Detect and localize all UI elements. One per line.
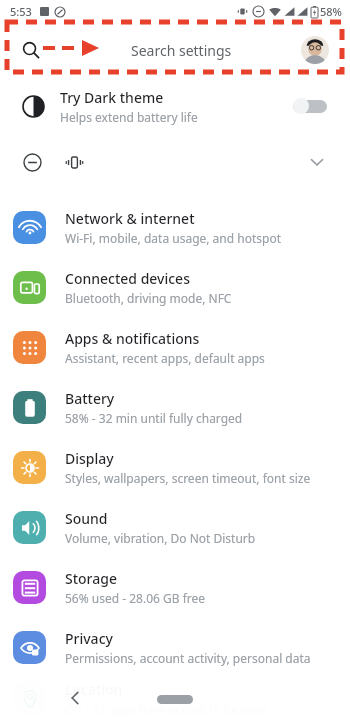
other: Expand — [309, 154, 325, 170]
button[interactable]: Location — [0, 677, 350, 719]
staticText: Try Dark theme — [60, 88, 164, 107]
other: Do not disturb — [23, 153, 42, 172]
staticText: Search settings — [131, 41, 232, 60]
staticText: Permissions, account activity, personal … — [65, 650, 311, 666]
staticText: 5:53 — [10, 4, 32, 19]
staticText: Apps & notifications — [65, 329, 200, 348]
staticText: Network & internet — [65, 209, 195, 228]
staticText: 56% used - 28.06 GB free — [65, 590, 206, 606]
button[interactable]: Battery — [0, 377, 350, 437]
staticText: Assistant, recent apps, default apps — [65, 350, 265, 366]
button[interactable]: Do not disturb — [9, 141, 341, 183]
button[interactable]: Back — [68, 691, 82, 705]
staticText: 58% — [320, 4, 342, 19]
button[interactable]: Apps & notifications — [0, 317, 350, 377]
staticText: Display — [65, 449, 114, 468]
staticText: Battery — [65, 389, 115, 408]
staticText: On - 22 apps have access to location — [65, 701, 269, 717]
button[interactable]: Search — [9, 28, 341, 72]
button[interactable]: Sound — [0, 497, 350, 557]
button[interactable]: Network & internet — [0, 197, 350, 257]
staticText: Wi-Fi, mobile, data usage, and hotspot — [65, 230, 281, 246]
button[interactable]: Connected devices — [0, 257, 350, 317]
button[interactable]: Display — [0, 437, 350, 497]
staticText: Helps extend battery life — [60, 109, 198, 125]
staticText: Storage — [65, 569, 117, 588]
staticText: Volume, vibration, Do Not Disturb — [65, 530, 256, 546]
button[interactable]: Try Dark theme — [9, 81, 341, 131]
staticText: Location — [65, 680, 123, 699]
staticText: Sound — [65, 509, 108, 528]
staticText: Styles, wallpapers, screen timeout, font… — [65, 470, 311, 486]
staticText: Connected devices — [65, 269, 190, 288]
button[interactable]: Storage — [0, 557, 350, 617]
button[interactable]: Home — [157, 695, 193, 704]
staticText: Privacy — [65, 629, 113, 648]
other: Search — [22, 41, 40, 59]
staticText: 58% - 32 min until fully charged — [65, 410, 243, 426]
button[interactable]: Privacy — [0, 617, 350, 677]
button[interactable]: Account — [301, 36, 329, 64]
staticText: Bluetooth, driving mode, NFC — [65, 290, 232, 306]
other: Vibrate — [66, 154, 83, 171]
